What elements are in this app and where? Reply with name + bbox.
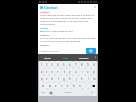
staticText: 8 <box>81 63 83 67</box>
button[interactable]: f <box>55 75 61 82</box>
button[interactable]: 0 <box>91 61 97 68</box>
button[interactable]: h <box>67 75 73 82</box>
button[interactable]: 1 <box>39 61 44 68</box>
staticText: t <box>64 70 65 74</box>
button[interactable]: Merci <box>38 54 57 61</box>
button[interactable]: r <box>55 68 61 75</box>
staticText: 7 <box>75 63 77 67</box>
button[interactable]: l <box>85 75 91 82</box>
button[interactable]: w <box>47 82 53 89</box>
staticText: ' <box>86 84 87 88</box>
button[interactable]: k <box>79 75 85 82</box>
button[interactable]: Backspace <box>89 82 97 89</box>
button[interactable]: 6 <box>67 61 73 68</box>
button[interactable]: ↵ <box>88 89 97 96</box>
staticText: Si tu ne veux pas de moi, alors de moi a… <box>40 37 96 43</box>
staticText: chat <box>63 56 69 59</box>
button[interactable]: z <box>44 68 49 75</box>
staticText: f <box>58 77 59 81</box>
staticText: a <box>41 70 43 74</box>
button[interactable]: p <box>91 68 97 75</box>
staticText: y <box>69 70 71 74</box>
staticText: q <box>41 77 43 81</box>
staticText: 6 <box>69 63 71 67</box>
button[interactable]: t <box>61 68 67 75</box>
staticText: Français <box>64 91 72 94</box>
staticText: MICHEL <box>40 27 49 30</box>
staticText: c <box>61 84 63 88</box>
staticText: v <box>67 84 69 88</box>
staticText: Bien joué ! Moi j’publie un arbr <box>40 30 73 33</box>
button[interactable]: e <box>49 68 55 75</box>
staticText: r <box>57 70 59 74</box>
staticText: n <box>79 84 81 88</box>
staticText: Merci <box>44 56 51 59</box>
button[interactable]: Space <box>54 89 82 96</box>
staticText: ▾ <box>95 56 97 59</box>
button[interactable]: Caution <box>38 4 98 10</box>
staticText: SABRINA <box>40 11 50 14</box>
staticText: 3 <box>51 63 53 67</box>
button[interactable]: 9 <box>85 61 91 68</box>
staticText: k <box>81 77 83 81</box>
staticText: ↵ <box>91 91 94 94</box>
button[interactable]: Emoji <box>48 89 54 96</box>
staticText: 5 <box>63 63 65 67</box>
button[interactable]: Bonjour <box>75 54 93 61</box>
button[interactable]: chat <box>57 54 75 61</box>
staticText: Caution <box>44 5 58 10</box>
button[interactable]: ?123 <box>39 89 48 96</box>
button[interactable]: d <box>49 75 55 82</box>
button[interactable]: 3 <box>49 61 55 68</box>
button[interactable]: j <box>73 75 79 82</box>
button[interactable]: 7 <box>73 61 79 68</box>
button[interactable]: Shift <box>39 82 47 89</box>
staticText: 2 <box>46 63 48 67</box>
staticText: ?123 <box>41 91 46 94</box>
button[interactable]: o <box>85 68 91 75</box>
button[interactable]: 5 <box>61 61 67 68</box>
button[interactable]: ' <box>83 82 89 89</box>
button[interactable]: c <box>59 82 65 89</box>
staticText: h <box>69 77 71 81</box>
staticText: Tu ne veux pas de mon cœur qu’il bat à c… <box>40 14 96 26</box>
button[interactable]: g <box>61 75 67 82</box>
button[interactable]: 4 <box>55 61 61 68</box>
staticText: x <box>55 84 57 88</box>
staticText: l <box>88 77 89 81</box>
staticText: m <box>93 77 96 81</box>
staticText: SABRINA <box>40 44 50 47</box>
staticText: w <box>49 84 52 88</box>
button[interactable]: v <box>65 82 71 89</box>
button[interactable]: a <box>39 68 44 75</box>
button[interactable]: s <box>44 75 49 82</box>
button[interactable]: m <box>91 75 97 82</box>
staticText: d <box>51 77 53 81</box>
staticText: Bonjour <box>79 56 89 59</box>
staticText: e <box>51 70 53 74</box>
button[interactable]: u <box>73 68 79 75</box>
button[interactable]: q <box>39 75 44 82</box>
button[interactable]: y <box>67 68 73 75</box>
staticText: SABRINA <box>40 34 50 37</box>
button[interactable]: i <box>79 68 85 75</box>
staticText: 1 <box>41 63 43 67</box>
button[interactable]: x <box>53 82 59 89</box>
staticText: 4 <box>57 63 59 67</box>
button[interactable]: 2 <box>44 61 49 68</box>
staticText: , <box>85 91 86 95</box>
staticText: p <box>93 70 95 74</box>
staticText: z <box>46 70 48 74</box>
button[interactable]: Send <box>86 48 96 54</box>
button[interactable]: , <box>82 89 88 96</box>
button[interactable]: More suggestions <box>93 54 98 61</box>
staticText: i <box>82 70 83 74</box>
button[interactable]: b <box>71 82 77 89</box>
staticText: g <box>63 77 65 81</box>
staticText: 9 <box>87 63 89 67</box>
button[interactable]: n <box>77 82 83 89</box>
staticText: Envoyer un Chat <box>41 50 59 53</box>
button[interactable]: 8 <box>79 61 85 68</box>
staticText: 0 <box>93 63 95 67</box>
